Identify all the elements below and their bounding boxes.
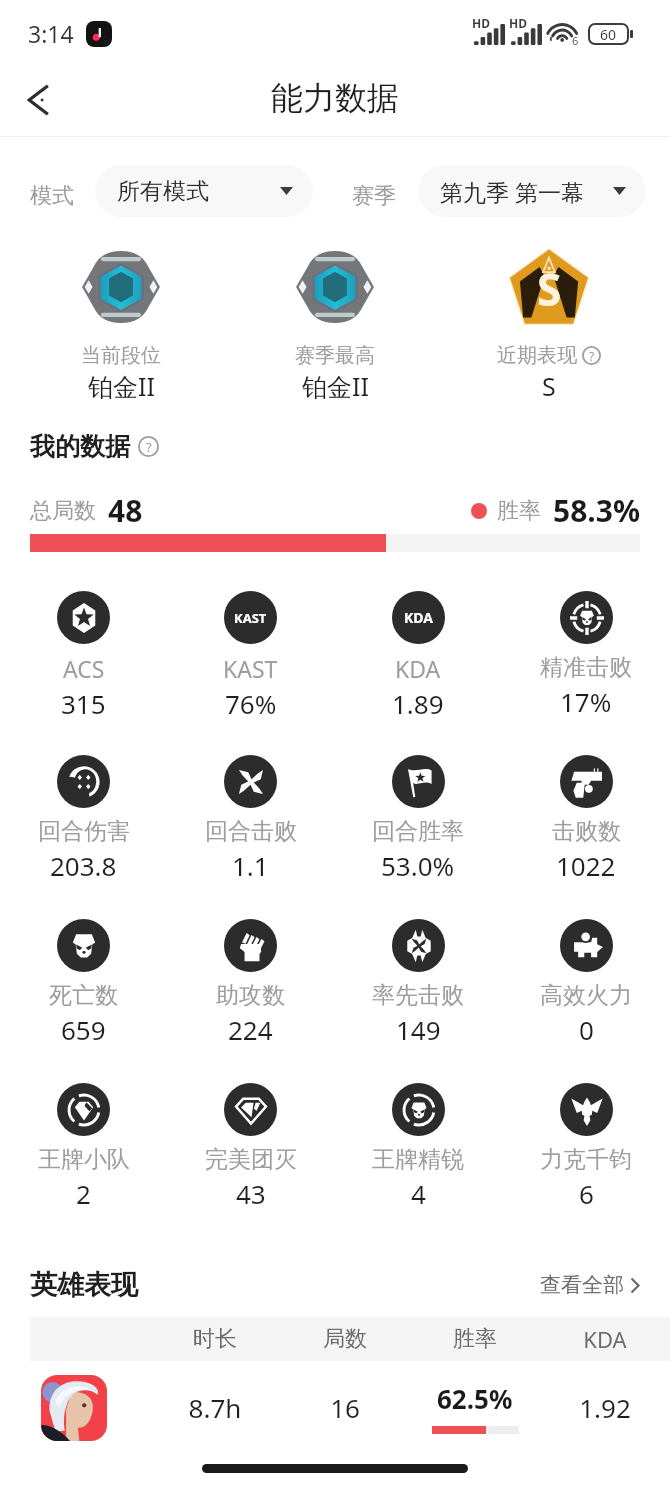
staticText: HD xyxy=(472,15,490,31)
staticText: 1.89 xyxy=(392,686,444,721)
staticText: 赛季最高 xyxy=(295,343,375,368)
staticText: 43 xyxy=(236,1176,266,1211)
button[interactable]: 查看全部 xyxy=(540,1272,640,1298)
staticText: 助攻数 xyxy=(216,981,285,1010)
button[interactable]: 王牌小队 xyxy=(0,1083,167,1211)
staticText: 48 xyxy=(108,490,143,531)
staticText: 1.92 xyxy=(540,1390,670,1425)
staticText: S xyxy=(537,259,562,319)
staticText: 17% xyxy=(560,684,612,719)
staticText: HD xyxy=(509,15,527,31)
staticText: 76% xyxy=(225,686,277,721)
staticText: 1.1 xyxy=(232,848,269,883)
button[interactable]: 死亡数 xyxy=(0,919,167,1047)
staticText: 第九季 第一幕 xyxy=(440,176,584,207)
staticText: 我的数据 xyxy=(30,431,130,462)
staticText: 精准击败 xyxy=(540,653,632,682)
staticText: 58.3% xyxy=(553,490,640,531)
staticText: 死亡数 xyxy=(49,981,118,1010)
staticText: 近期表现 xyxy=(497,343,577,368)
staticText: 模式 xyxy=(30,182,74,210)
staticText: KDA xyxy=(540,1324,670,1354)
staticText: 203.8 xyxy=(50,848,117,883)
button[interactable]: 8.7h xyxy=(0,1361,670,1453)
staticText: 击败数 xyxy=(552,817,621,846)
staticText: KAST xyxy=(234,609,267,627)
staticText: 总局数 xyxy=(30,497,96,525)
button[interactable]: S xyxy=(442,248,656,403)
staticText: 659 xyxy=(61,1012,106,1047)
staticText: 当前段位 xyxy=(81,343,161,368)
button[interactable]: 高效火力 xyxy=(502,919,670,1047)
staticText: 时长 xyxy=(150,1325,280,1353)
staticText: ? xyxy=(146,438,152,456)
staticText: 率先击败 xyxy=(372,981,464,1010)
staticText: 所有模式 xyxy=(117,177,209,206)
staticText: 2 xyxy=(76,1176,91,1211)
staticText: 胜率 xyxy=(497,497,541,525)
button[interactable]: KAST xyxy=(167,591,334,721)
staticText: 力克千钧 xyxy=(540,1145,632,1174)
staticText: 局数 xyxy=(280,1325,410,1353)
staticText: 224 xyxy=(228,1012,273,1047)
button[interactable]: 完美团灭 xyxy=(167,1083,334,1211)
staticText: 8.7h xyxy=(150,1390,280,1425)
staticText: 高效火力 xyxy=(540,981,632,1010)
staticText: 能力数据 xyxy=(271,78,399,118)
button[interactable]: 回合击败 xyxy=(167,755,334,883)
staticText: 16 xyxy=(280,1390,410,1425)
staticText: 3:14 xyxy=(28,18,74,49)
button[interactable]: 所有模式 xyxy=(95,165,313,217)
button[interactable]: 击败数 xyxy=(502,755,670,883)
staticText: 查看全部 xyxy=(540,1272,624,1298)
button[interactable]: Back xyxy=(12,72,68,128)
button[interactable]: 赛季最高 xyxy=(228,248,442,403)
staticText: 回合胜率 xyxy=(372,817,464,846)
staticText: ACS xyxy=(63,653,105,684)
button[interactable]: 当前段位 xyxy=(14,248,228,403)
staticText: KDA xyxy=(395,653,441,684)
staticText: 315 xyxy=(61,686,106,721)
staticText: 1022 xyxy=(556,848,616,883)
button[interactable]: 力克千钧 xyxy=(502,1083,670,1211)
button[interactable]: 王牌精锐 xyxy=(334,1083,502,1211)
button[interactable]: 回合伤害 xyxy=(0,755,167,883)
button[interactable]: 率先击败 xyxy=(334,919,502,1047)
staticText: 6 xyxy=(579,1176,594,1211)
button[interactable]: 助攻数 xyxy=(167,919,334,1047)
staticText: KDA xyxy=(404,608,433,627)
staticText: 62.5% xyxy=(437,1381,513,1416)
staticText: 完美团灭 xyxy=(205,1145,297,1174)
staticText: 回合击败 xyxy=(205,817,297,846)
staticText: KAST xyxy=(223,653,278,684)
staticText: 王牌小队 xyxy=(38,1145,130,1174)
staticText: ? xyxy=(589,348,595,364)
button[interactable]: 第九季 第一幕 xyxy=(418,165,646,217)
staticText: 铂金II xyxy=(88,369,155,403)
staticText: 赛季 xyxy=(352,182,396,210)
button[interactable]: KDA xyxy=(334,591,502,721)
staticText: 王牌精锐 xyxy=(372,1145,464,1174)
staticText: 6 xyxy=(572,33,579,48)
staticText: 胜率 xyxy=(410,1325,540,1353)
staticText: 4 xyxy=(411,1176,426,1211)
button[interactable]: 精准击败 xyxy=(502,591,670,719)
button[interactable]: 回合胜率 xyxy=(334,755,502,883)
staticText: 60 xyxy=(600,25,617,44)
button[interactable]: ACS xyxy=(0,591,167,721)
staticText: S xyxy=(542,369,556,403)
staticText: 0 xyxy=(579,1012,594,1047)
staticText: 149 xyxy=(396,1012,441,1047)
staticText: 53.0% xyxy=(381,848,455,883)
staticText: 回合伤害 xyxy=(38,817,130,846)
staticText: 英雄表现 xyxy=(30,1268,138,1302)
staticText: 铂金II xyxy=(302,369,369,403)
